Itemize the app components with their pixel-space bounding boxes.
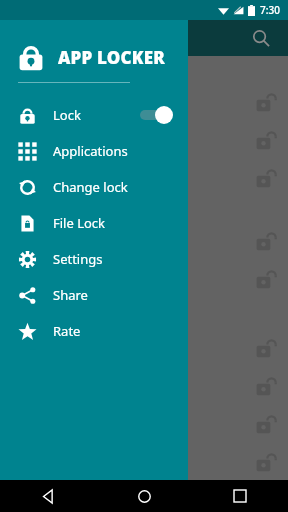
staticText: Share (53, 286, 88, 304)
button[interactable]: Toggle lock (0, 367, 288, 405)
staticText: 7:30 (260, 3, 280, 17)
other: Toggle lock (256, 337, 278, 359)
other: Toggle lock (256, 413, 278, 435)
button[interactable]: Toggle lock (0, 405, 288, 443)
staticText: File Lock (53, 214, 106, 232)
staticText: Change lock (53, 178, 128, 196)
staticText: Applications (53, 142, 128, 160)
other: Toggle lock (256, 167, 278, 189)
other: Toggle lock (256, 91, 278, 113)
button[interactable]: Back (0, 480, 96, 512)
button[interactable]: Share (0, 277, 188, 313)
other: Toggle lock (256, 129, 278, 151)
button[interactable]: Change lock (0, 169, 188, 205)
button[interactable]: Toggle lock (0, 329, 288, 367)
button[interactable]: Home (96, 480, 192, 512)
button[interactable]: Toggle lock (0, 159, 288, 197)
button[interactable]: File Lock (0, 205, 188, 241)
staticText: Lock (53, 106, 81, 124)
button[interactable]: Toggle lock (0, 83, 288, 121)
button[interactable]: Toggle lock (0, 121, 288, 159)
other: Toggle lock (256, 230, 278, 252)
button[interactable]: Rate (0, 313, 188, 349)
button[interactable]: Lock (0, 97, 188, 133)
button[interactable]: Settings (0, 241, 188, 277)
button[interactable]: Search (246, 23, 276, 53)
other: Toggle lock (256, 268, 278, 290)
button[interactable]: Applications (0, 133, 188, 169)
other: Toggle lock (256, 451, 278, 473)
other: Toggle lock (256, 375, 278, 397)
button[interactable]: Toggle lock (0, 443, 288, 481)
button[interactable]: Toggle lock (0, 260, 288, 298)
staticText: Rate (53, 322, 81, 340)
staticText: Settings (53, 250, 103, 268)
staticText: APP LOCKER (58, 46, 165, 69)
button[interactable]: Recents (192, 480, 288, 512)
button[interactable]: Toggle lock (0, 222, 288, 260)
